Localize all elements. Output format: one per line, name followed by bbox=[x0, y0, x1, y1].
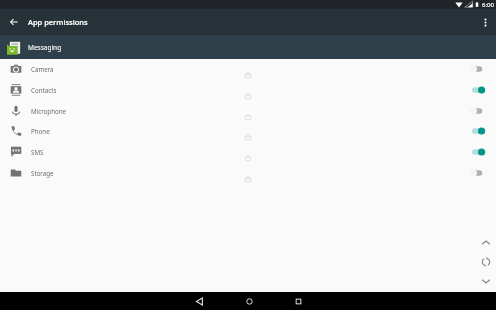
staticText: App permissions bbox=[28, 17, 88, 27]
button[interactable]: Microphone bbox=[0, 100, 496, 121]
button[interactable]: Camera bbox=[0, 58, 496, 79]
button[interactable]: Contacts bbox=[0, 79, 496, 100]
button[interactable]: Refresh bbox=[478, 254, 494, 270]
staticText: Camera bbox=[31, 65, 54, 73]
button[interactable]: Scroll up bbox=[478, 235, 494, 251]
button[interactable]: SMS bbox=[0, 141, 496, 162]
staticText: Storage bbox=[31, 169, 54, 177]
button[interactable]: Switch on bbox=[466, 83, 486, 97]
button[interactable]: Back bbox=[183, 292, 215, 310]
button[interactable]: Phone bbox=[0, 120, 496, 141]
staticText: Messaging bbox=[28, 43, 62, 52]
button[interactable]: Back bbox=[4, 12, 24, 32]
staticText: 6:00 bbox=[482, 1, 494, 9]
button[interactable]: More options bbox=[475, 12, 495, 32]
button[interactable]: Switch on bbox=[466, 124, 486, 138]
button[interactable]: Home bbox=[233, 292, 265, 310]
button[interactable]: Switch off bbox=[466, 166, 486, 180]
staticText: Phone bbox=[31, 127, 50, 135]
button[interactable]: Switch off bbox=[466, 62, 486, 76]
button[interactable]: Storage bbox=[0, 162, 496, 183]
button[interactable]: Scroll down bbox=[478, 273, 494, 289]
button[interactable]: Recents bbox=[282, 292, 314, 310]
staticText: Contacts bbox=[31, 86, 57, 94]
button[interactable]: Messaging bbox=[0, 35, 496, 59]
staticText: SMS bbox=[31, 148, 44, 156]
button[interactable]: Switch on bbox=[466, 145, 486, 159]
button[interactable]: Switch off bbox=[466, 104, 486, 118]
staticText: Microphone bbox=[31, 107, 67, 115]
